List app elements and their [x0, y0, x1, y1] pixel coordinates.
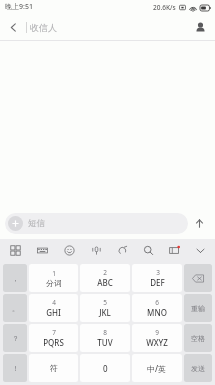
- button[interactable]: 5: [80, 294, 130, 322]
- staticText: 重输: [191, 304, 205, 313]
- button[interactable]: 2: [80, 264, 130, 292]
- button[interactable]: 符: [29, 354, 78, 382]
- button[interactable]: Keyboard layouts: [2, 239, 29, 261]
- staticText: 8: [103, 328, 107, 337]
- button[interactable]: 重输: [184, 294, 212, 322]
- button[interactable]: 8: [80, 324, 130, 352]
- button[interactable]: 1: [29, 264, 78, 292]
- staticText: 空格: [191, 334, 205, 343]
- button[interactable]: Delete: [184, 264, 212, 292]
- staticText: 2: [103, 268, 107, 277]
- staticText: 。: [12, 304, 19, 313]
- button[interactable]: 空格: [184, 324, 212, 352]
- staticText: ，: [12, 274, 19, 283]
- button[interactable]: 6: [132, 294, 182, 322]
- button[interactable]: Stickers: [161, 239, 187, 261]
- staticText: 6: [155, 298, 159, 307]
- staticText: 中/英: [147, 363, 167, 374]
- button[interactable]: 0: [80, 354, 130, 382]
- staticText: MNO: [147, 307, 167, 318]
- staticText: 发送: [191, 364, 205, 373]
- staticText: 0: [103, 363, 108, 374]
- staticText: DEF: [150, 277, 165, 288]
- button[interactable]: 中/英: [132, 354, 182, 382]
- button[interactable]: Contacts: [185, 14, 215, 40]
- button[interactable]: 发送: [184, 354, 212, 382]
- button[interactable]: 4: [29, 294, 78, 322]
- button[interactable]: Add attachment: [8, 216, 23, 231]
- staticText: 4: [52, 298, 56, 307]
- staticText: JKL: [99, 307, 111, 318]
- button[interactable]: Clipboard: [109, 239, 135, 261]
- staticText: 收信人: [30, 22, 57, 33]
- staticText: 分词: [46, 278, 62, 288]
- staticText: ！: [12, 364, 19, 373]
- button[interactable]: ？: [3, 324, 27, 352]
- button[interactable]: Handwriting: [29, 239, 56, 261]
- staticText: 晚上9:51: [5, 2, 33, 12]
- staticText: 7: [52, 328, 56, 337]
- button[interactable]: ！: [3, 354, 27, 382]
- button[interactable]: Emoji: [56, 239, 83, 261]
- staticText: 符: [50, 363, 58, 373]
- staticText: WXYZ: [146, 337, 168, 348]
- button[interactable]: 3: [132, 264, 182, 292]
- button[interactable]: Search: [135, 239, 161, 261]
- staticText: 5: [103, 298, 107, 307]
- staticText: ABC: [97, 277, 113, 288]
- button[interactable]: Add attachment: [5, 213, 188, 234]
- button[interactable]: Voice: [83, 239, 109, 261]
- button[interactable]: ，: [3, 264, 27, 292]
- staticText: 1: [52, 269, 56, 278]
- staticText: 3: [156, 268, 160, 277]
- button[interactable]: Back: [0, 14, 26, 40]
- staticText: PQRS: [43, 337, 64, 348]
- button[interactable]: 9: [132, 324, 182, 352]
- staticText: 9: [155, 328, 159, 337]
- button[interactable]: Hide keyboard: [187, 239, 213, 261]
- staticText: 20.6K/s: [153, 3, 176, 12]
- staticText: 短信: [28, 218, 45, 229]
- staticText: GHI: [46, 307, 61, 318]
- button[interactable]: 7: [29, 324, 78, 352]
- button[interactable]: Send: [188, 212, 210, 234]
- staticText: TUV: [97, 337, 113, 348]
- staticText: ？: [12, 334, 19, 343]
